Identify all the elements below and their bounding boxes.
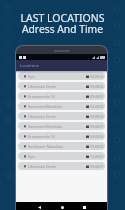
staticText: Kyiv xyxy=(28,74,35,79)
staticText: Kachkanar Makaluka xyxy=(28,144,64,149)
staticText: 09:48:04 xyxy=(90,114,104,119)
button[interactable]: Kyiv xyxy=(16,72,107,82)
button[interactable]: Kamenica Makaluka xyxy=(16,122,107,132)
button[interactable]: Kramatorska 14 xyxy=(16,132,107,142)
staticText: 12:48:20 xyxy=(90,154,104,159)
staticText: 09:48:04 xyxy=(90,144,104,149)
staticText: Locations xyxy=(20,63,39,69)
button[interactable]: Kyiv xyxy=(16,152,107,162)
staticText: Kramatorska 14 xyxy=(28,134,55,139)
staticText: Kramatorska 14 xyxy=(28,94,55,99)
button[interactable]: Ukrainska Street xyxy=(16,162,107,172)
staticText: 04:48:34 xyxy=(90,74,104,79)
button[interactable]: Kramatorska 14 xyxy=(16,92,107,102)
button[interactable]: Ukrainska Street xyxy=(16,82,107,92)
staticText: 09:48:01 xyxy=(90,124,104,129)
staticText: 09:48:04 xyxy=(90,84,104,89)
staticText: Kamenica Makaluka xyxy=(28,104,62,109)
staticText: Ukrainska Street xyxy=(28,114,56,119)
staticText: 09:48:01 xyxy=(90,164,104,169)
staticText: 09:48:01 xyxy=(90,94,104,99)
button[interactable]: Kamenica Makaluka xyxy=(16,102,107,112)
button[interactable]: Kachkanar Makaluka xyxy=(16,142,107,152)
staticText: LAST LOCATIONS xyxy=(0,11,125,25)
staticText: Adress And Time xyxy=(0,22,125,36)
button[interactable]: Ukrainska Street xyxy=(16,112,107,122)
staticText: 04:48:34 xyxy=(90,134,104,139)
staticText: Ukrainska Street xyxy=(28,164,56,169)
button[interactable]: Recent apps xyxy=(82,205,86,209)
button[interactable]: Back xyxy=(37,205,41,209)
staticText: Kyiv xyxy=(28,154,35,159)
staticText: Kamenica Makaluka xyxy=(28,124,62,129)
staticText: Ukrainska Street xyxy=(28,84,56,89)
button[interactable]: Home xyxy=(60,205,64,209)
staticText: 04:48:34 xyxy=(90,104,104,109)
